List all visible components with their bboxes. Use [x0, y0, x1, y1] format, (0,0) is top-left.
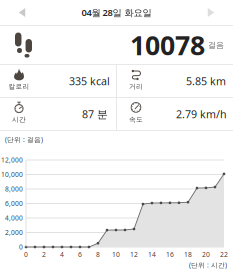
staticText: 2 [42, 250, 46, 259]
staticText: 335 kcal [69, 74, 110, 88]
staticText: 5.85 km [186, 74, 226, 88]
button[interactable]: Next day [189, 0, 233, 25]
staticText: 16 [166, 250, 174, 259]
staticText: 0 [19, 243, 23, 251]
button[interactable]: 시간 [0, 98, 116, 130]
staticText: (단위 : 시간) [189, 261, 227, 269]
staticText: 걸음 [208, 40, 224, 50]
staticText: 04월 28일 화요일 [81, 6, 151, 19]
staticText: 8 [96, 250, 100, 259]
staticText: 12,000 [1, 156, 23, 164]
staticText: 4,000 [5, 214, 23, 222]
staticText: 10078 [130, 27, 205, 63]
staticText: 18 [184, 250, 192, 259]
staticText: 20 [202, 250, 210, 259]
staticText: 6,000 [5, 199, 23, 208]
staticText: 14 [148, 250, 156, 259]
staticText: 2,000 [5, 228, 23, 237]
staticText: 6 [78, 250, 82, 259]
staticText: (단위 : 걸음) [5, 135, 43, 144]
staticText: 2.79 km/h [176, 107, 227, 121]
staticText: 거리 [129, 82, 143, 91]
staticText: 0 [24, 250, 28, 259]
staticText: 22 [220, 250, 228, 259]
button[interactable]: 거리 [117, 65, 233, 97]
staticText: 10,000 [1, 170, 23, 179]
staticText: 4 [60, 250, 64, 259]
staticText: 시간 [12, 115, 26, 124]
button[interactable]: Previous day [0, 0, 44, 25]
staticText: 8,000 [5, 185, 23, 193]
staticText: 87 분 [82, 107, 108, 121]
staticText: 속도 [129, 115, 143, 124]
staticText: 칼로리 [8, 82, 29, 91]
staticText: 10 [112, 250, 120, 259]
button[interactable]: 속도 [117, 98, 233, 130]
staticText: 12 [130, 250, 138, 259]
button[interactable]: 칼로리 [0, 65, 116, 97]
